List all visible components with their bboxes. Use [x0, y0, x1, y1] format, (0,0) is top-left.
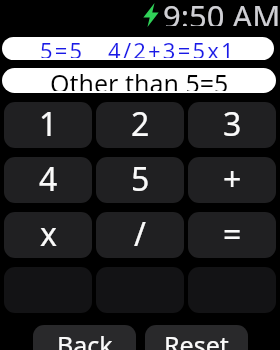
button[interactable]: 1 [4, 102, 92, 148]
staticText: + [223, 157, 242, 201]
staticText: 5=5 4/2+3=5x1 [40, 37, 236, 58]
button[interactable]: / [96, 212, 184, 258]
button[interactable]: 3 [188, 102, 276, 148]
staticText: 4 [39, 157, 58, 201]
button[interactable]: x [4, 212, 92, 258]
button[interactable]: 2 [96, 102, 184, 148]
staticText: / [134, 212, 146, 256]
staticText: = [223, 212, 242, 256]
button[interactable]: 5=5 4/2+3=5x1 [2, 37, 274, 60]
button[interactable]: Other than 5=5 [2, 68, 276, 93]
staticText: Other than 5=5 [50, 68, 229, 91]
button[interactable]: 5 [96, 157, 184, 203]
button[interactable]: = [188, 212, 276, 258]
staticText: Back [57, 328, 113, 350]
staticText: Reset [164, 328, 229, 350]
button[interactable]: Reset [145, 325, 248, 350]
staticText: x [40, 212, 57, 256]
button[interactable] [188, 267, 276, 313]
button[interactable] [96, 267, 184, 313]
staticText: 1 [39, 102, 58, 146]
button[interactable] [4, 267, 92, 313]
button[interactable]: Back [33, 325, 136, 350]
staticText: 3 [223, 102, 242, 146]
button[interactable]: 4 [4, 157, 92, 203]
staticText: 9:50 AM [163, 0, 280, 26]
staticText: 5 [131, 157, 150, 201]
button[interactable]: + [188, 157, 276, 203]
staticText: 2 [131, 102, 150, 146]
